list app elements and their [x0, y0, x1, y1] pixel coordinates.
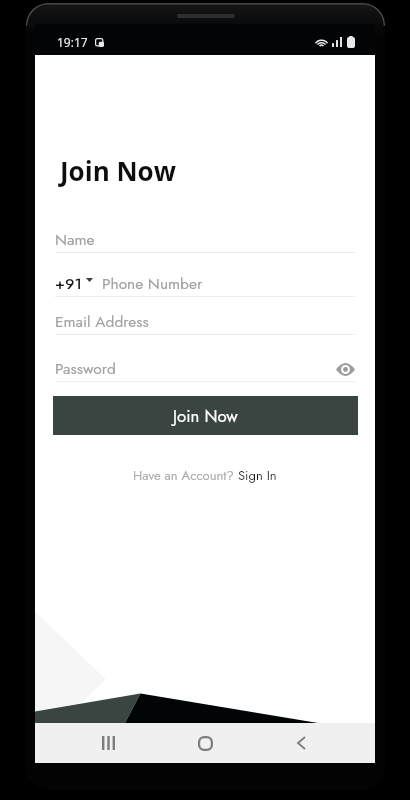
button[interactable]: Password	[55, 353, 355, 382]
staticText: Phone Number	[102, 272, 203, 294]
button[interactable]: Name	[55, 224, 355, 253]
staticText: Join Now	[173, 404, 238, 428]
staticText: Password	[55, 357, 116, 379]
button[interactable]: Sign In	[238, 466, 277, 485]
staticText: Sign In	[238, 466, 277, 485]
staticText: 19:17	[57, 34, 88, 50]
staticText: Join Now	[60, 153, 176, 188]
staticText: Email Address	[55, 310, 149, 332]
button[interactable]: Back	[282, 723, 322, 763]
staticText: +91	[55, 272, 82, 294]
staticText: Have an Account?	[133, 466, 238, 485]
staticText: Name	[55, 228, 95, 250]
button[interactable]: +91	[55, 268, 355, 297]
button[interactable]: Home	[185, 723, 225, 763]
button[interactable]: Email Address	[55, 306, 355, 335]
button[interactable]: Join Now	[53, 396, 358, 435]
button[interactable]: Recent apps	[88, 723, 128, 763]
other: Show password	[336, 363, 355, 376]
